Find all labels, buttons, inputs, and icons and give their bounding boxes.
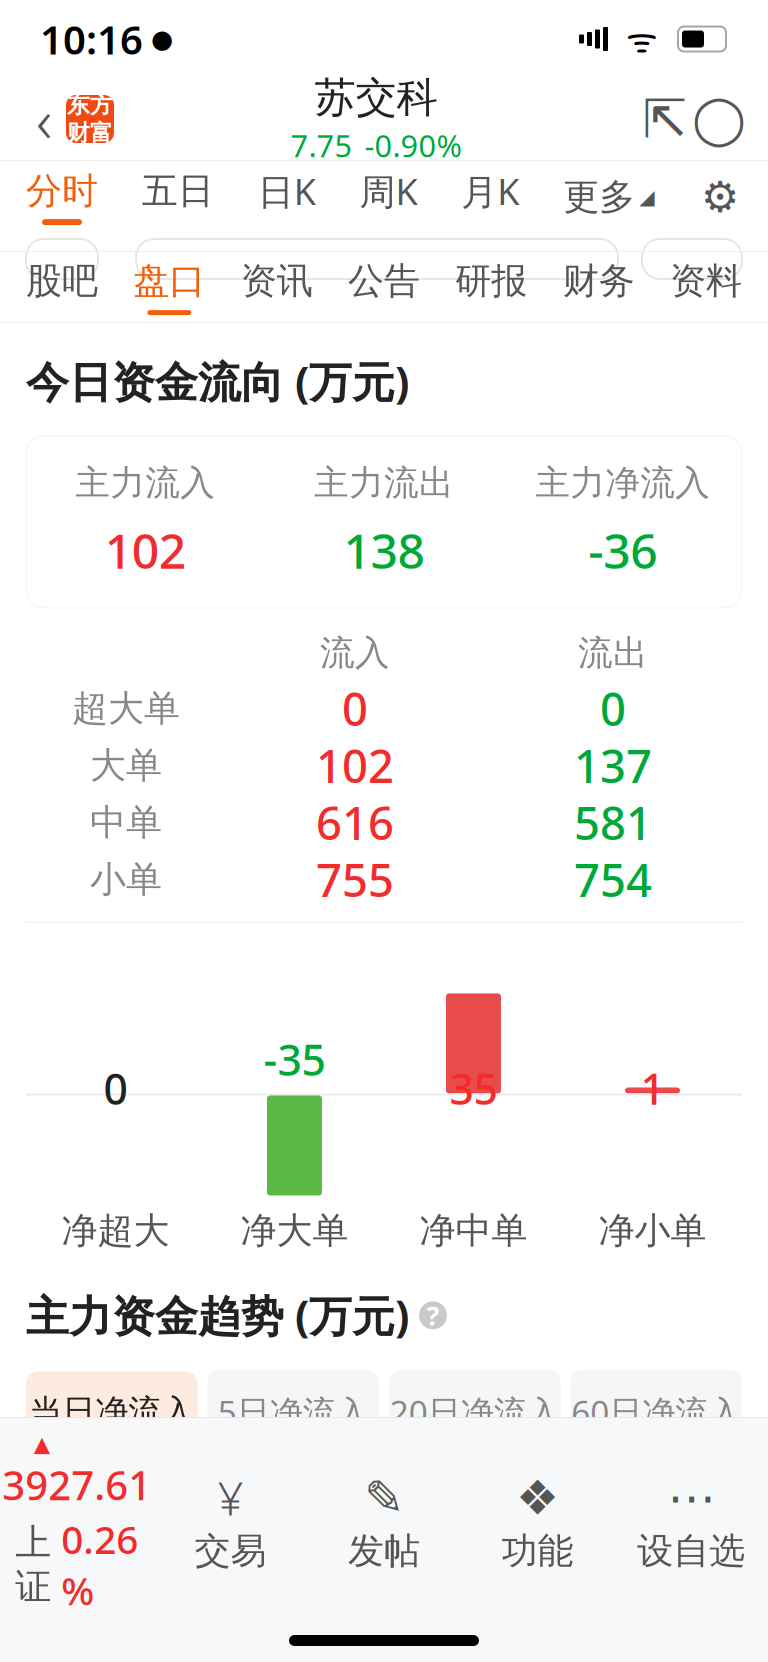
button[interactable]: 资料 (670, 252, 742, 322)
staticText: 主力净流入 (535, 462, 710, 504)
button[interactable]: Back (22, 93, 66, 145)
staticText: 138 (343, 518, 424, 582)
staticText: 净大单 (240, 1209, 348, 1253)
button[interactable]: 更多 (563, 161, 654, 233)
staticText: 公告 (348, 259, 420, 303)
staticText: ❖ (516, 1471, 559, 1525)
staticText: −15768 (403, 1444, 547, 1499)
staticText: ⋯ (667, 1471, 715, 1525)
staticText: 35 (449, 1060, 497, 1117)
staticText: 60日净流入 (571, 1390, 741, 1434)
staticText: 755 (316, 849, 394, 910)
button[interactable]: 月K (461, 161, 519, 233)
button[interactable]: 东方财富 (66, 95, 114, 143)
staticText: −36 (76, 1442, 148, 1497)
button[interactable]: ❖ (461, 1475, 614, 1573)
staticText: ⇱ (642, 89, 687, 149)
staticText: 分时 (26, 169, 98, 213)
staticText: 发帖 (348, 1529, 420, 1573)
staticText: 今日资金流向 (万元) (26, 353, 409, 410)
staticText: 616 (316, 792, 394, 853)
staticText: 主力流入 (75, 462, 215, 504)
staticText: 10:16 (40, 12, 143, 65)
staticText: ᯤ (608, 16, 676, 62)
staticText: 小单 (90, 857, 162, 902)
staticText: 净小单 (598, 1209, 706, 1253)
staticText: 3927.61 (2, 1458, 151, 1511)
staticText: 7.8 (29, 1597, 69, 1634)
staticText: 20日净流入 (390, 1390, 560, 1434)
staticText: 当日净流入 (29, 1391, 194, 1432)
staticText: ¥ (217, 1468, 243, 1528)
staticText: 交易 (194, 1529, 266, 1573)
staticText: 0 (103, 1060, 127, 1117)
button[interactable]: Help (419, 1301, 447, 1329)
staticText: ▲ (34, 1432, 50, 1456)
staticText: 超大单 (72, 686, 180, 731)
button[interactable]: 20日净流入 (389, 1370, 560, 1519)
button[interactable]: 60日净流入 (570, 1370, 742, 1519)
button[interactable]: ✎ (307, 1475, 461, 1573)
staticText: 盘口 (133, 259, 205, 303)
staticText: 0 (600, 678, 626, 739)
staticText: 股吧 (26, 259, 98, 303)
staticText: 流入 (320, 632, 390, 674)
staticText: 中单 (90, 800, 162, 845)
staticText: −4284 (233, 1444, 353, 1499)
button[interactable]: Settings (698, 161, 742, 233)
staticText: 流出 (578, 632, 648, 674)
staticText: 5日净流入 (218, 1390, 369, 1434)
staticText: ◢ (639, 186, 654, 208)
button[interactable]: 五日 (142, 161, 214, 233)
staticText: 102 (316, 735, 394, 796)
button[interactable]: 资讯 (241, 252, 313, 322)
staticText: 1 (640, 1060, 664, 1117)
button[interactable]: 上证 3927.61 (0, 1432, 154, 1616)
staticText: 资料 (670, 259, 742, 303)
staticText: 581 (574, 792, 652, 853)
staticText: 净超大 (61, 1209, 169, 1253)
button[interactable]: 5日净流入 (207, 1370, 379, 1519)
button[interactable]: Search (692, 92, 746, 146)
staticText: −32793 (584, 1444, 728, 1499)
button[interactable]: 周K (359, 161, 417, 233)
staticText: -0.90% (364, 125, 461, 166)
button[interactable]: 财务 (563, 252, 635, 322)
staticText: 日K (258, 167, 316, 215)
staticText: 功能 (502, 1529, 574, 1573)
staticText: 月K (461, 167, 519, 215)
staticText: 0.26% (61, 1513, 138, 1616)
staticText: 苏交科 (314, 72, 437, 123)
button[interactable]: 当日净流入 (26, 1371, 197, 1517)
staticText: -36 (588, 518, 657, 582)
button[interactable]: 研报 (455, 252, 527, 322)
staticText: 137 (574, 735, 652, 796)
staticText: 股价 (297, 1543, 363, 1584)
staticText: 102 (105, 518, 186, 582)
staticText: ✎ (364, 1471, 404, 1525)
staticText: ‹ (36, 78, 52, 160)
staticText: 东方 (67, 91, 113, 119)
staticText: 4 (72, 1597, 88, 1634)
staticText: 7.75 (290, 125, 352, 166)
button[interactable]: ¥ (154, 1475, 307, 1573)
button[interactable]: 日K (258, 161, 316, 233)
button[interactable]: ⋯ (614, 1475, 768, 1573)
button[interactable]: 盘口 (133, 252, 205, 322)
staticText: 754 (574, 849, 652, 910)
staticText: 资讯 (241, 259, 313, 303)
button[interactable]: 股吧 (26, 252, 98, 322)
staticText: 周K (359, 167, 417, 215)
staticText: 财务 (563, 259, 635, 303)
staticText: ⚙ (701, 173, 739, 221)
staticText: 财富 (67, 119, 113, 147)
button[interactable]: Share (638, 92, 692, 146)
staticText: ◯ (692, 92, 746, 146)
button[interactable]: 分时 (26, 161, 98, 233)
button[interactable]: 公告 (348, 252, 420, 322)
staticText: 0 (342, 678, 368, 739)
staticText: 更多 (563, 175, 635, 219)
staticText: 主力资金趋势 (万元) (26, 1287, 409, 1344)
staticText: -35 (263, 1031, 325, 1087)
staticText: 主力净流入 (56, 1543, 221, 1584)
